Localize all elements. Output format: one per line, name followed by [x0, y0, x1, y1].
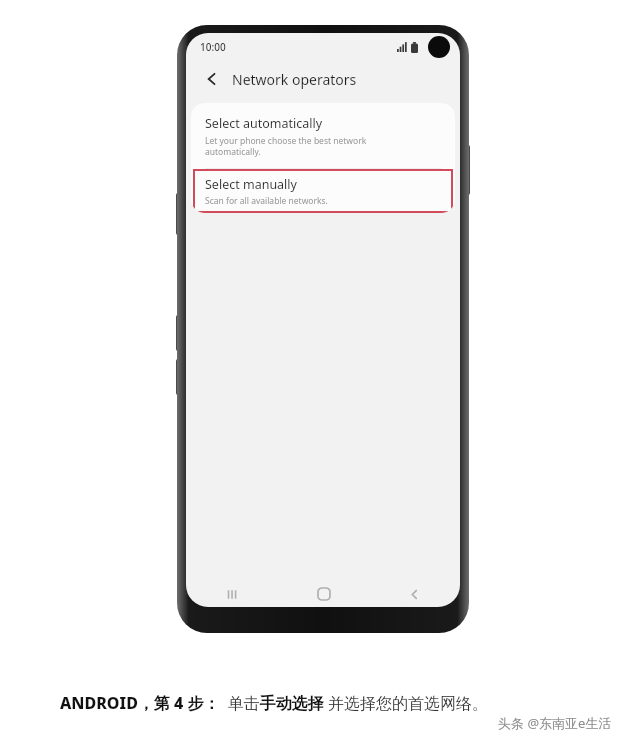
button[interactable]: Back [369, 581, 460, 607]
button[interactable]: Back [200, 67, 224, 91]
button[interactable]: Home [278, 581, 369, 607]
button[interactable]: Select automatically [191, 103, 455, 168]
staticText: Select manually [205, 176, 297, 193]
staticText: Let your phone choose the best network a… [205, 135, 367, 157]
staticText: 头条 @东南亚e生活 [498, 714, 612, 732]
button[interactable]: Recents [186, 581, 278, 607]
staticText: 10:00 [200, 40, 226, 54]
button[interactable]: Select manually [193, 169, 453, 213]
staticText: Scan for all available networks. [205, 195, 328, 207]
staticText: Network operators [232, 70, 357, 89]
staticText: ANDROID，第 4 步： 单击手动选择 并选择您的首选网络。 [60, 692, 488, 714]
staticText: Select automatically [205, 115, 323, 132]
